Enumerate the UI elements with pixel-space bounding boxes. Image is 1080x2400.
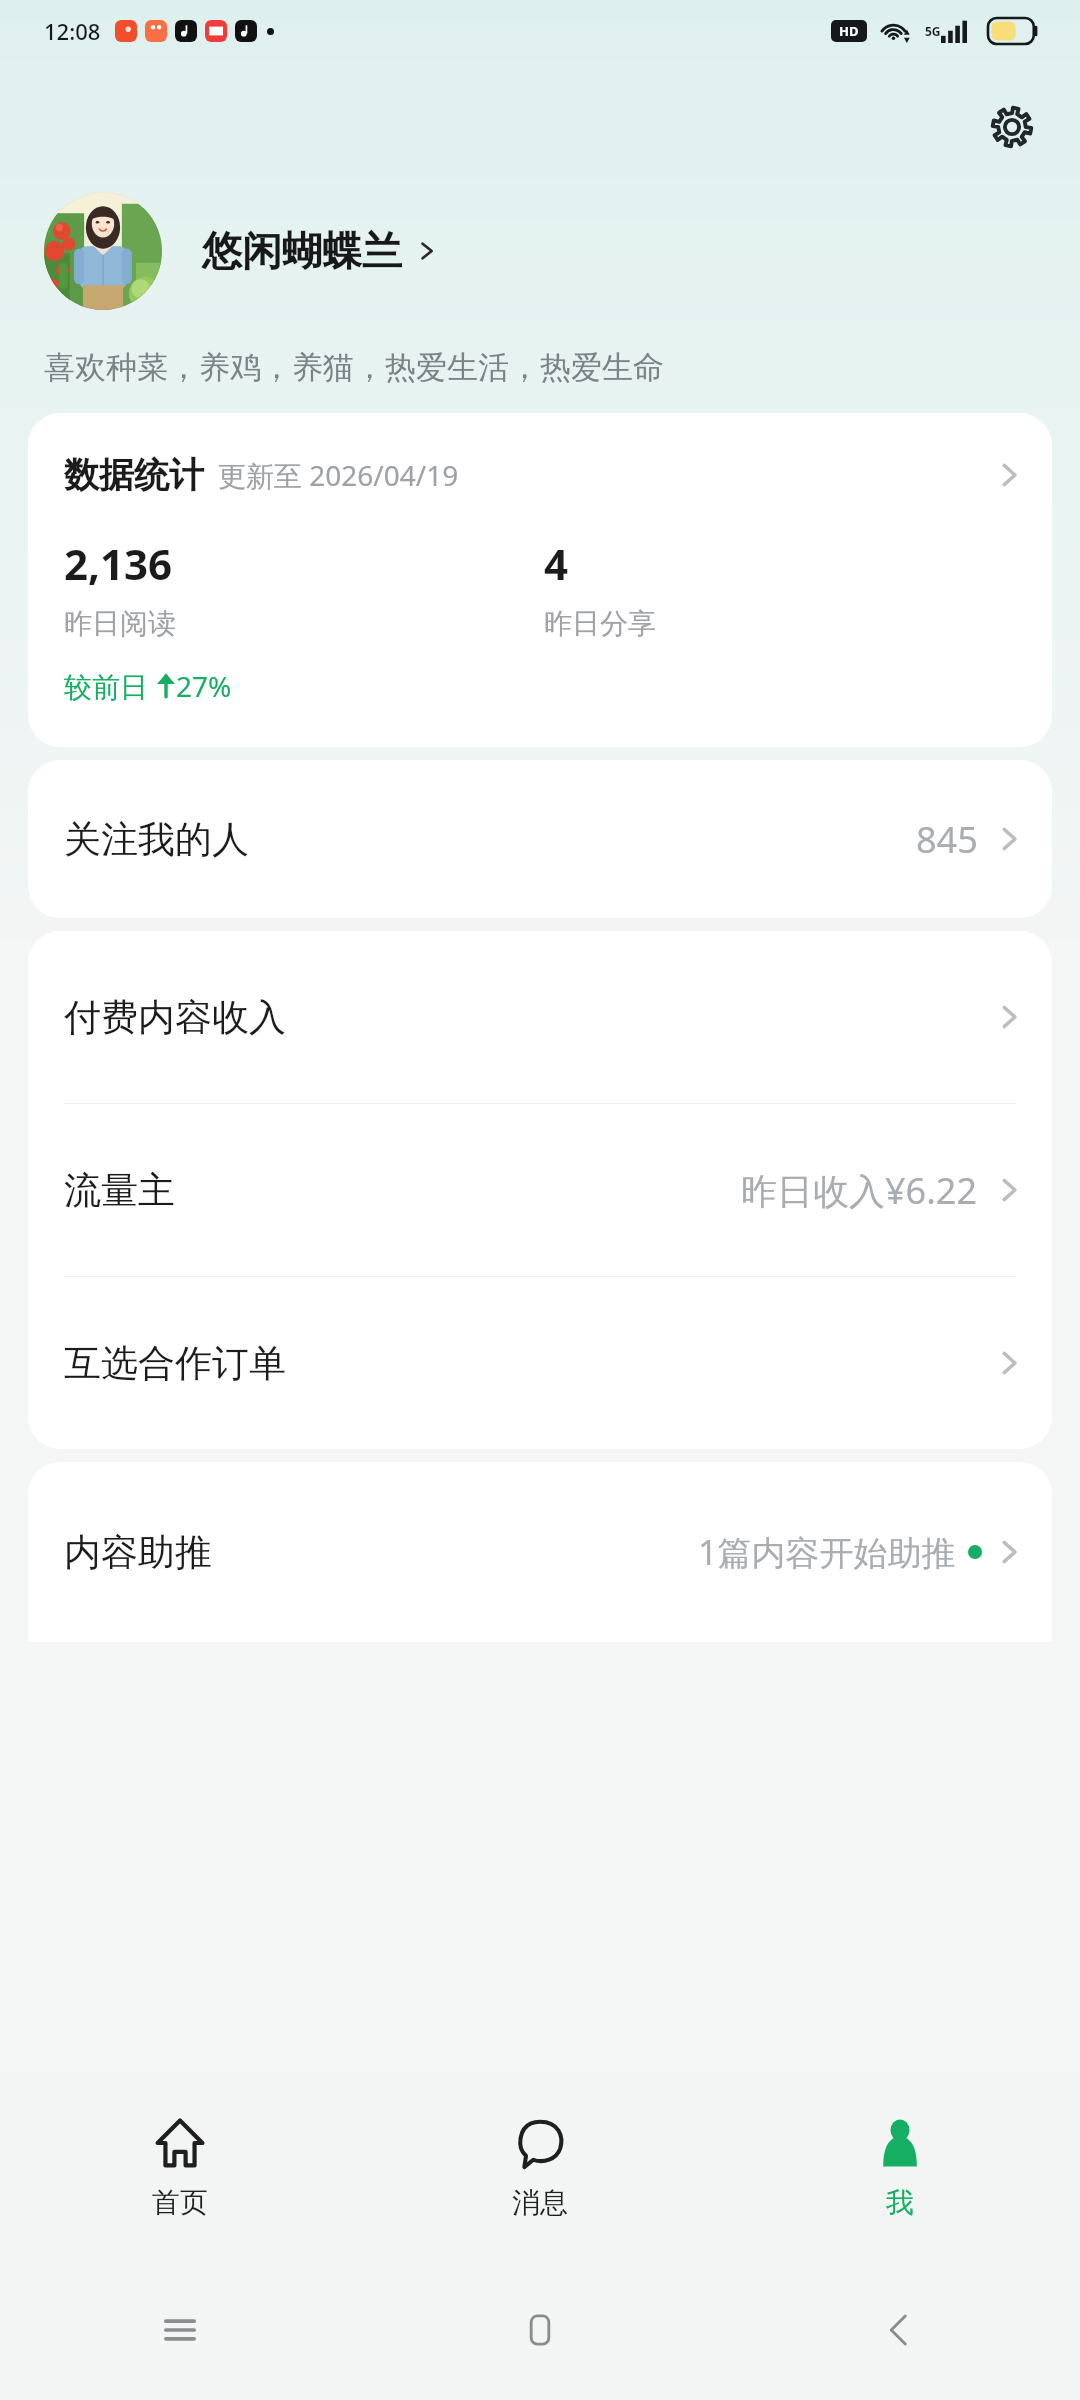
staticText: 关注我的人	[64, 816, 249, 863]
staticText: 我	[886, 2185, 914, 2220]
staticText: 2,136	[64, 535, 173, 592]
button[interactable]: 互选合作订单	[28, 1277, 1052, 1449]
staticText: 1篇内容开始助推	[698, 1529, 956, 1575]
button[interactable]: Home	[360, 2260, 720, 2400]
staticText: 4	[544, 535, 569, 592]
button[interactable]: 悠闲蝴蝶兰	[44, 192, 1040, 310]
staticText: 昨日分享	[544, 606, 656, 641]
staticText: 昨日收入¥6.22	[741, 1166, 978, 1215]
button[interactable]: 付费内容收入	[28, 931, 1052, 1103]
staticText: 首页	[152, 2185, 208, 2220]
staticText: 内容助推	[64, 1529, 212, 1576]
staticText: 更新至 2026/04/19	[218, 456, 459, 494]
button[interactable]: Settings	[976, 91, 1048, 163]
button[interactable]: Recents	[0, 2260, 360, 2400]
button[interactable]: 内容助推	[28, 1462, 1052, 1642]
button[interactable]: 关注我的人	[28, 760, 1052, 918]
staticText: 悠闲蝴蝶兰	[202, 226, 402, 276]
staticText: 消息	[512, 2185, 568, 2220]
staticText: 流量主	[64, 1167, 175, 1214]
button[interactable]: 流量主	[28, 1104, 1052, 1276]
button[interactable]: 首页	[0, 2074, 360, 2260]
button[interactable]: 我	[720, 2074, 1080, 2260]
button[interactable]: 数据统计	[28, 413, 1052, 747]
staticText: 付费内容收入	[64, 994, 286, 1041]
staticText: 较前日	[64, 667, 156, 705]
staticText: 5G	[925, 23, 941, 39]
staticText: 12:08	[44, 16, 101, 46]
staticText: HD	[839, 22, 859, 40]
staticText: 昨日阅读	[64, 606, 176, 641]
button[interactable]: Back	[720, 2260, 1080, 2400]
staticText: 845	[916, 815, 978, 864]
button[interactable]: 消息	[360, 2074, 720, 2260]
staticText: 数据统计	[64, 453, 204, 497]
staticText: 互选合作订单	[64, 1340, 286, 1387]
staticText: 27%	[176, 667, 232, 705]
staticText: 喜欢种菜，养鸡，养猫，热爱生活，热爱生命	[44, 348, 664, 387]
